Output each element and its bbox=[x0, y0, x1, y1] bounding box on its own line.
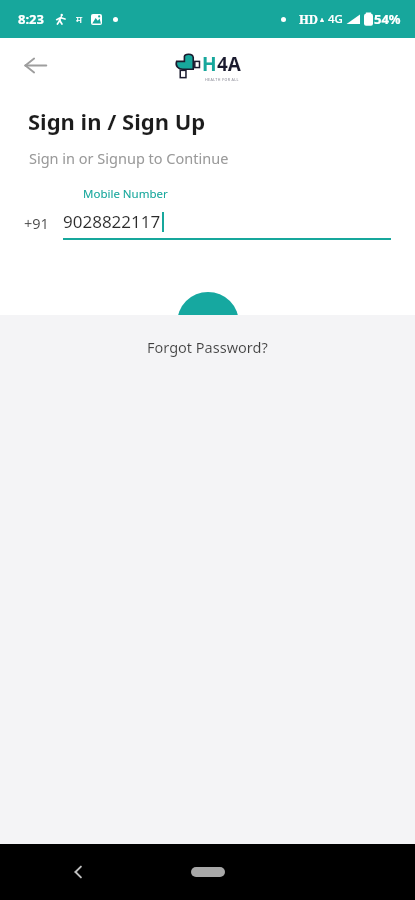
staticText: Sign in / Sign Up bbox=[28, 106, 206, 136]
button[interactable]: Home bbox=[180, 859, 236, 885]
staticText: +91 bbox=[24, 213, 49, 233]
staticText: Mobile Number bbox=[83, 186, 168, 202]
staticText: ▴ bbox=[320, 15, 325, 24]
button[interactable]: Forgot Password? bbox=[137, 331, 278, 363]
staticText: H bbox=[202, 51, 217, 77]
staticText: 4A bbox=[217, 51, 242, 77]
staticText: म bbox=[76, 12, 82, 26]
button[interactable]: 9028822117 bbox=[63, 210, 391, 240]
staticText: HEALTH FOR ALL bbox=[205, 77, 239, 82]
staticText: 4G bbox=[328, 11, 343, 27]
button[interactable]: Back bbox=[58, 851, 100, 893]
staticText: 9028822117 bbox=[63, 210, 161, 233]
staticText: 54% bbox=[374, 10, 401, 28]
staticText: Sign in or Signup to Continue bbox=[29, 148, 229, 168]
staticText: Forgot Password? bbox=[147, 337, 268, 357]
button[interactable]: Back bbox=[13, 43, 57, 87]
button[interactable]: Continue bbox=[177, 292, 239, 354]
staticText: HD bbox=[299, 11, 319, 27]
staticText: 8:23 bbox=[18, 10, 44, 28]
